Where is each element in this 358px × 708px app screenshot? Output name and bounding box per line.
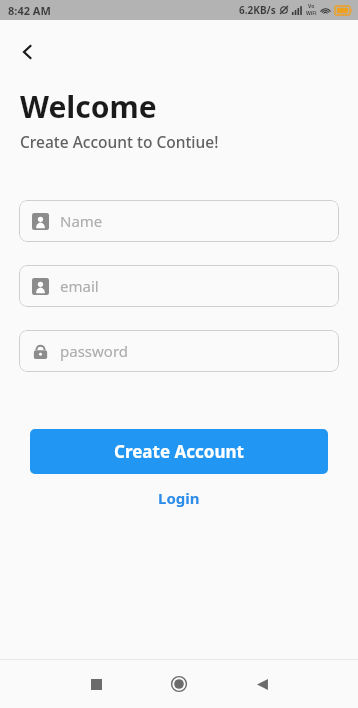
button[interactable]: Login: [144, 482, 214, 514]
button[interactable]: password: [19, 330, 339, 372]
button[interactable]: Home: [157, 662, 201, 706]
staticText: Create Account: [114, 440, 244, 463]
staticText: Create Account to Contiue!: [20, 131, 219, 152]
button[interactable]: Name: [19, 200, 339, 242]
staticText: Name: [60, 211, 103, 231]
staticText: password: [60, 341, 128, 361]
staticText: 6.2KB/s: [239, 3, 276, 17]
staticText: email: [60, 276, 99, 296]
button[interactable]: Create Account: [30, 429, 328, 474]
button[interactable]: Recents: [74, 662, 118, 706]
staticText: Vo: [308, 3, 315, 10]
staticText: Welcome: [20, 86, 157, 127]
staticText: Login: [158, 488, 200, 508]
staticText: WiFi: [306, 10, 317, 17]
button[interactable]: Back: [8, 32, 48, 72]
staticText: 8:42 AM: [8, 3, 51, 18]
button[interactable]: email: [19, 265, 339, 307]
button[interactable]: Back: [240, 662, 284, 706]
